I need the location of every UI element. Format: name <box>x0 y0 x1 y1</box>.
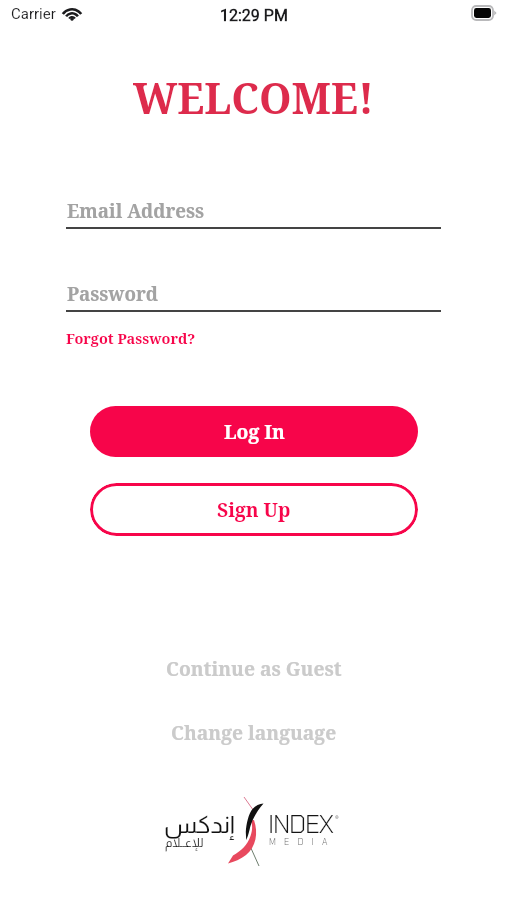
staticText: Change language <box>171 719 337 746</box>
button[interactable]: Log In <box>90 406 418 457</box>
staticText: Sign Up <box>217 496 291 523</box>
staticText: Forgot Password? <box>66 328 196 348</box>
staticText: 12:29 PM <box>220 6 288 25</box>
button[interactable]: Index Media logo <box>160 798 346 866</box>
button[interactable]: Forgot Password? <box>66 328 196 348</box>
button[interactable]: Sign Up <box>90 483 418 536</box>
staticText: Password <box>67 280 158 307</box>
staticText: MEDIA <box>269 836 336 848</box>
other: Wi-Fi <box>60 5 84 21</box>
staticText: Continue as Guest <box>166 655 342 682</box>
staticText: للإعــلام <box>165 836 204 849</box>
button[interactable] <box>66 185 441 229</box>
staticText: WELCOME! <box>0 68 507 127</box>
other: Battery full <box>471 5 499 21</box>
staticText: Log In <box>224 418 285 445</box>
staticText: Carrier <box>11 5 56 23</box>
button[interactable] <box>66 268 441 312</box>
button[interactable]: Continue as Guest <box>166 655 342 682</box>
button[interactable]: Change language <box>171 719 337 746</box>
staticText: إندكس <box>164 811 235 838</box>
staticText: INDEX <box>268 807 333 841</box>
staticText: Email Address <box>67 197 205 224</box>
staticText: ® <box>335 814 339 823</box>
